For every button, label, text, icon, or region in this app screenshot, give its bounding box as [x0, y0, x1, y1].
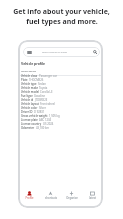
staticText: Front wheel — [40, 102, 55, 106]
staticText: Corolla LE — [40, 90, 53, 94]
other: Search — [93, 50, 97, 54]
staticText: Driver ID — [21, 110, 33, 114]
button[interactable]: shortcuts — [40, 191, 61, 200]
staticText: Vehicle make — [21, 86, 38, 90]
staticText: ABC 1234 — [39, 118, 52, 122]
staticText: 1HGCM826 — [29, 78, 44, 82]
staticText: Toyota — [39, 86, 48, 90]
staticText: License plate — [21, 118, 38, 122]
staticText: JTDBR32E — [35, 98, 48, 102]
staticText: Passenger car — [39, 74, 57, 78]
staticText: Odometer — [21, 126, 35, 130]
staticText: Vehicle class — [21, 74, 38, 78]
staticText: Get info about your vehicle, — [13, 7, 110, 17]
staticText: fuel types and more. — [26, 17, 98, 27]
staticText: Gross vehicle weight — [21, 114, 48, 118]
staticText: search vehicles or plates — [42, 51, 68, 54]
staticText: shortcuts — [45, 196, 57, 200]
staticText: latest — [89, 196, 96, 200]
button[interactable]: Menu — [23, 47, 100, 57]
staticText: 1,505 kg — [49, 114, 60, 118]
staticText: 43,100 km — [36, 126, 50, 130]
staticText: Fuel type — [21, 94, 33, 98]
other: Menu — [27, 50, 32, 55]
staticText: Vehicle model — [21, 90, 39, 94]
staticText: D 92831 — [34, 110, 45, 114]
staticText: Organize — [66, 196, 78, 200]
staticText: Profile — [25, 196, 34, 200]
staticText: License country — [21, 122, 42, 126]
staticText: Vehicle id — [21, 98, 34, 102]
staticText: Vehicle type — [21, 82, 37, 86]
button[interactable]: Organize — [61, 191, 82, 200]
button[interactable]: Profile — [18, 191, 40, 200]
button[interactable]: latest — [82, 191, 103, 200]
staticText: Vehicle color — [21, 106, 38, 110]
staticText: Silver — [39, 106, 46, 110]
staticText: Vehicle details — [21, 70, 36, 73]
staticText: Vehicle profile — [21, 61, 46, 66]
staticText: US 2024 — [43, 122, 54, 126]
staticText: Gasoline — [34, 94, 45, 98]
staticText: Plate — [21, 78, 28, 82]
staticText: Vehicle layout — [21, 102, 39, 106]
staticText: Sedan — [38, 82, 46, 86]
